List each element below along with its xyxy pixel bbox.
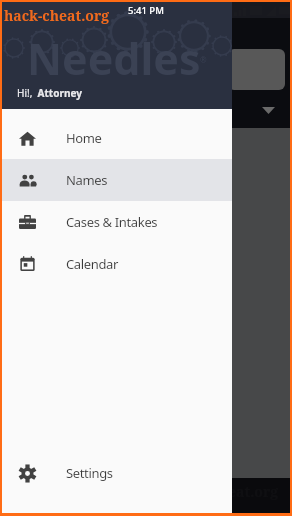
staticText: Home [66, 129, 102, 147]
button[interactable]: Names [2, 159, 232, 201]
staticText: Names [66, 171, 108, 189]
staticText: ® [200, 54, 207, 65]
button[interactable]: Cases & Intakes [2, 201, 232, 243]
button[interactable]: Calendar [2, 243, 232, 285]
button[interactable]: Home [2, 117, 232, 159]
staticText: Settings [66, 464, 113, 482]
staticText: Calendar [66, 255, 119, 273]
staticText: hack-cheat.org [4, 6, 110, 25]
button[interactable]: Expand [255, 99, 281, 121]
staticText: Cases & Intakes [66, 213, 158, 231]
staticText: 5:41 PM [128, 4, 164, 17]
button[interactable]: Settings [2, 452, 232, 494]
staticText: Needles [27, 29, 201, 88]
staticText: hack-cheat.org [173, 482, 279, 501]
staticText: Hi!, Attorney [17, 86, 82, 100]
